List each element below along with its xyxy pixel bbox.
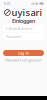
- staticText: Einloggen: [12, 17, 35, 25]
- staticText: uyisari: [11, 6, 42, 19]
- staticText: Passwort vergessen?: [5, 57, 42, 63]
- staticText: 9:41: [3, 1, 10, 6]
- staticText: E-Mail-Adresse: [6, 26, 33, 31]
- staticText: Log in: [17, 50, 29, 56]
- staticText: Passwort: [6, 34, 22, 39]
- button[interactable]: Log in: [3, 50, 44, 56]
- button[interactable]: Passwort vergessen?: [5, 58, 42, 62]
